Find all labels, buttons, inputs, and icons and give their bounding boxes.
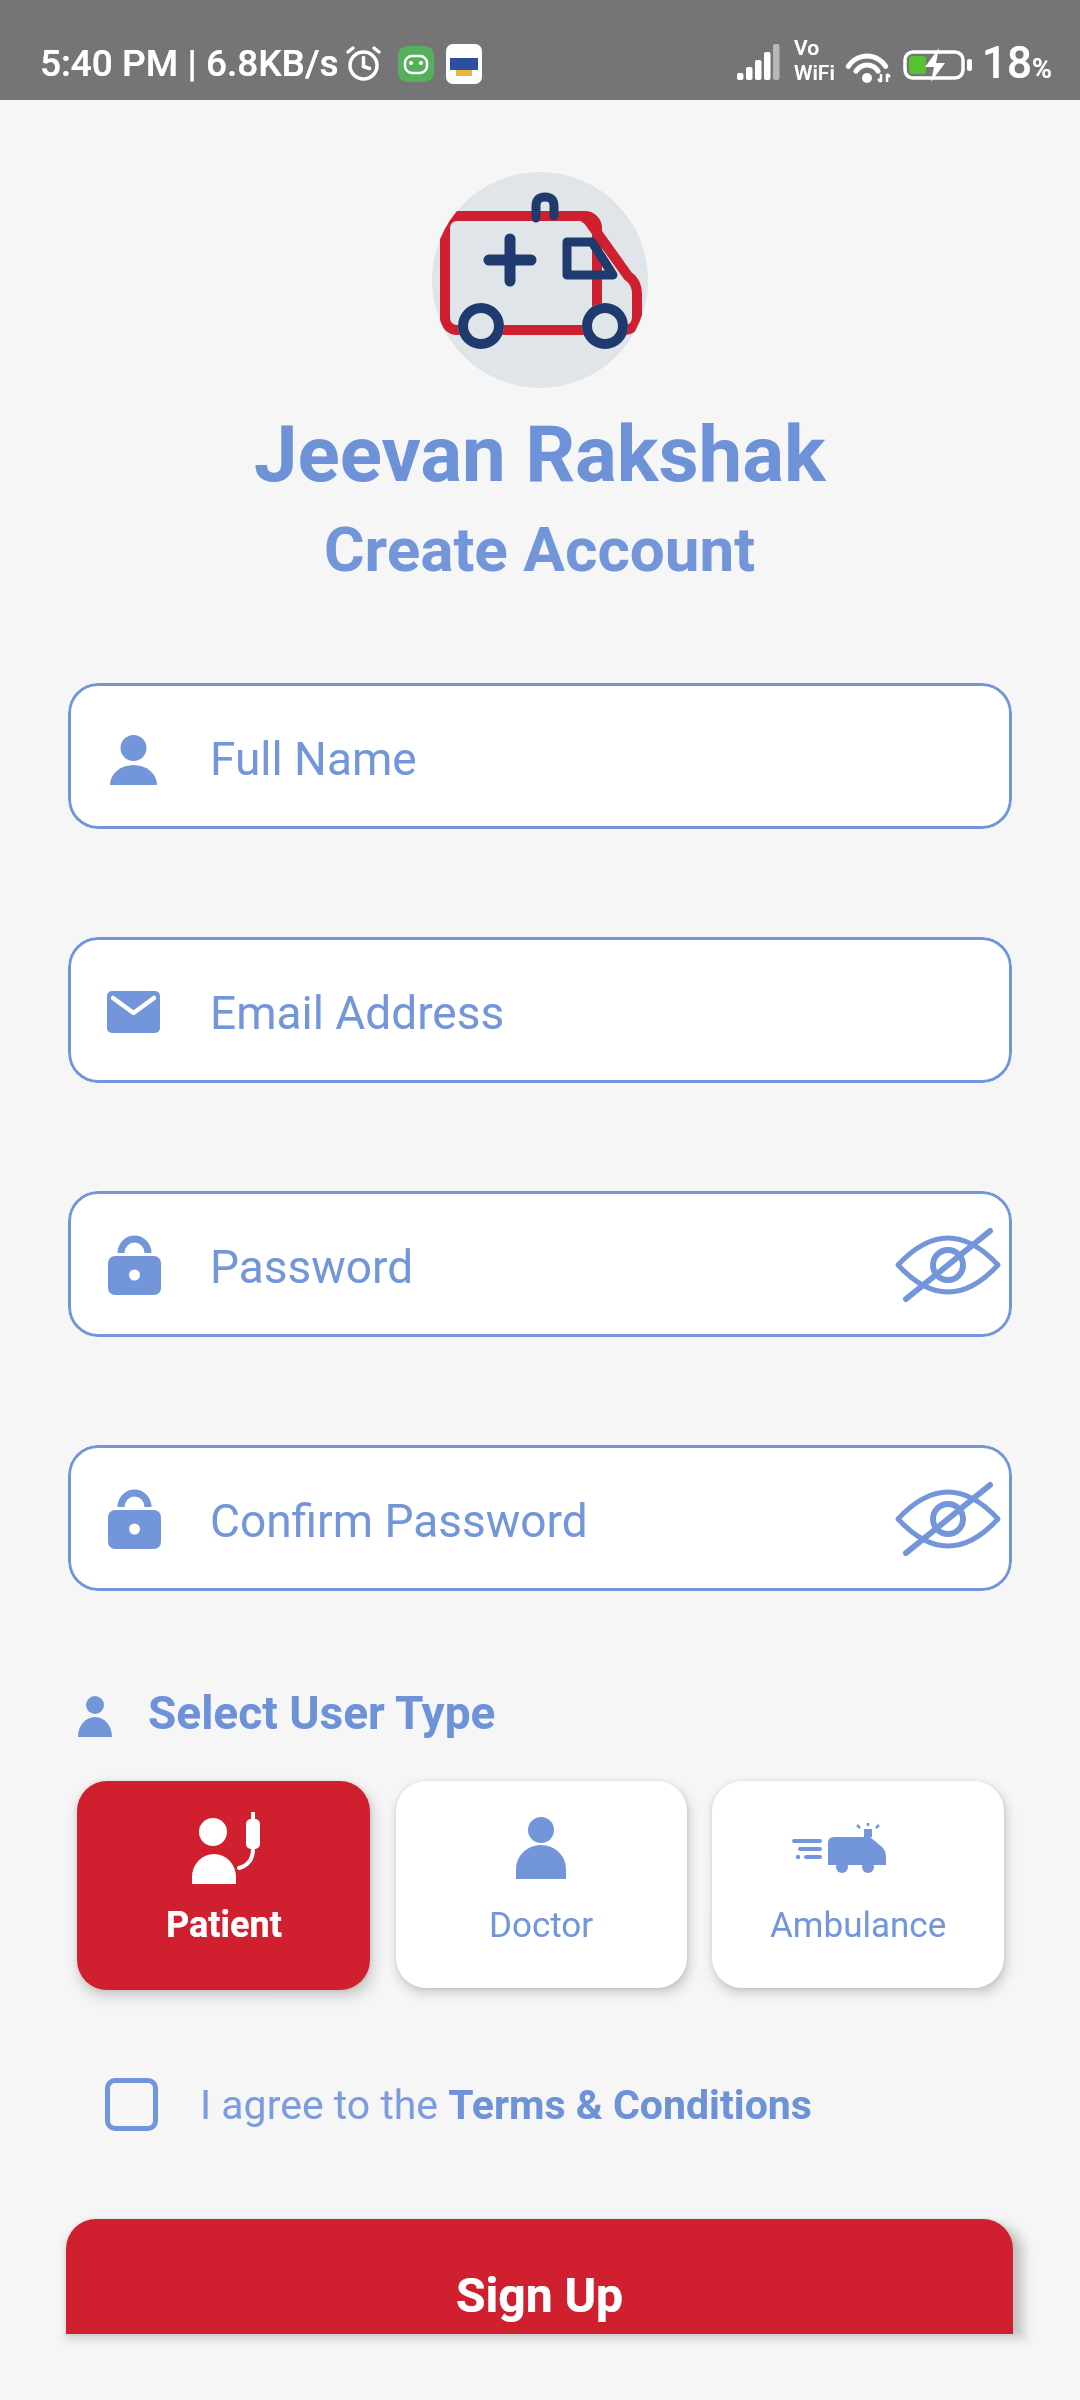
button[interactable] [896,1227,1000,1303]
staticText: Doctor [489,1905,594,1946]
staticText: Jeevan Rakshak [254,409,826,500]
staticText: I agree to the Terms & Conditions [200,2081,812,2129]
staticText: Email Address [210,986,505,1040]
button[interactable]: Email Address [68,937,1012,1083]
staticText: Vo [794,36,820,61]
button[interactable]: Doctor [396,1781,687,1988]
button[interactable] [896,1481,1000,1557]
staticText: 18% [982,37,1052,89]
staticText: 5:40 PM | 6.8KB/s [40,42,339,85]
button[interactable]: Patient [77,1781,370,1990]
button[interactable]: I agree to the Terms & Conditions [105,2078,812,2131]
staticText: Select User Type [148,1686,496,1740]
button[interactable]: Full Name [68,683,1012,829]
staticText: Ambulance [770,1905,947,1946]
button[interactable]: Sign Up [66,2219,1013,2334]
button[interactable]: Ambulance [712,1781,1004,1988]
staticText: Sign Up [456,2267,624,2323]
button[interactable]: Confirm Password [68,1445,1012,1591]
staticText: Confirm Password [210,1494,588,1548]
staticText: Password [210,1240,414,1294]
staticText: Patient [166,1904,282,1946]
staticText: WiFi [794,61,835,86]
staticText: Create Account [324,513,756,586]
button[interactable]: Password [68,1191,1012,1337]
staticText: Full Name [210,732,417,786]
